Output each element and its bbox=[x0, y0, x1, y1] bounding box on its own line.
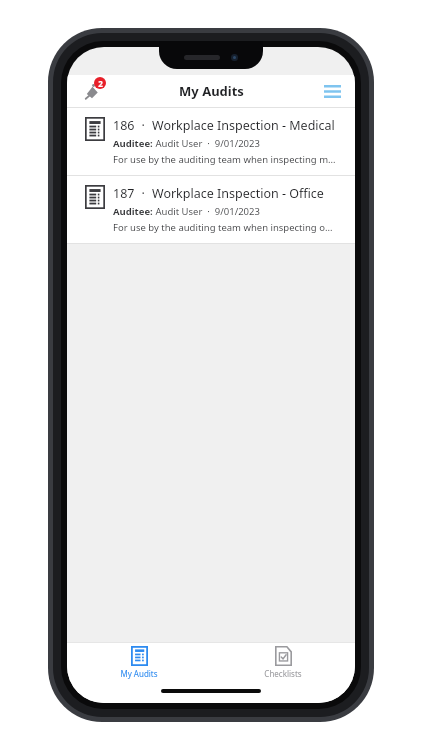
button[interactable]: My Audits bbox=[67, 643, 211, 681]
staticText: 187 bbox=[113, 185, 135, 202]
staticText: Workplace Inspection - Office bbox=[152, 185, 324, 202]
button[interactable]: Notifications bbox=[77, 76, 107, 106]
staticText: Auditee: bbox=[113, 137, 153, 150]
staticText: Audit User · 9/01/2023 bbox=[153, 137, 260, 150]
staticText: 186 bbox=[113, 117, 135, 134]
staticText: Audit User · 9/01/2023 bbox=[153, 205, 260, 218]
staticText: For use by the auditing team when inspec… bbox=[113, 221, 345, 234]
staticText: My Audits bbox=[120, 668, 158, 679]
staticText: My Audits bbox=[179, 82, 244, 100]
staticText: 2 bbox=[98, 78, 103, 89]
staticText: Workplace Inspection - Medical bbox=[152, 117, 335, 134]
button[interactable]: Menu bbox=[319, 78, 345, 104]
staticText: Auditee: bbox=[113, 205, 153, 218]
staticText: Checklists bbox=[264, 668, 302, 679]
staticText: · bbox=[135, 185, 152, 202]
staticText: For use by the auditing team when inspec… bbox=[113, 153, 345, 166]
button[interactable]: Checklists bbox=[211, 643, 355, 681]
button[interactable]: 186 bbox=[67, 108, 355, 175]
staticText: · bbox=[135, 117, 152, 134]
button[interactable]: 187 bbox=[67, 176, 355, 243]
